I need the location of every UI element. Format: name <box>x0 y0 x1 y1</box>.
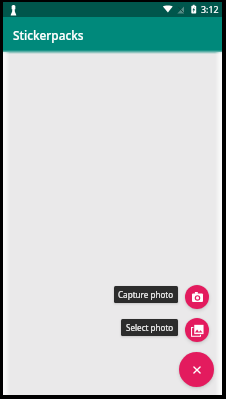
staticText: 3:12 <box>201 4 219 16</box>
button[interactable]: Close menu <box>179 352 214 387</box>
button[interactable]: Capture photo <box>114 286 178 303</box>
button[interactable]: Capture photo <box>185 285 209 309</box>
staticText: Capture photo <box>118 289 174 300</box>
staticText: Stickerpacks <box>13 27 84 43</box>
button[interactable]: Select photo <box>121 319 178 336</box>
button[interactable]: Select photo <box>185 318 209 342</box>
staticText: Select photo <box>126 322 174 333</box>
